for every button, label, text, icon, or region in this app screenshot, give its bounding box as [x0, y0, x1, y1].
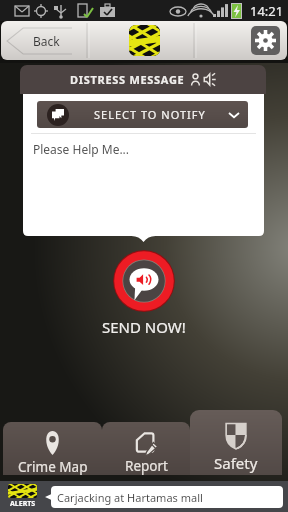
button[interactable]: ALERTS [0, 484, 45, 509]
staticText: Back [33, 33, 60, 49]
button[interactable]: Report [102, 422, 190, 475]
staticText: DISTRESS MESSAGE [70, 72, 185, 87]
staticText: Report [125, 457, 168, 475]
button[interactable]: Back [6, 27, 72, 55]
staticText: SEND NOW! [102, 317, 186, 337]
staticText: 14:21 [250, 2, 284, 20]
button[interactable]: Crime Map [3, 422, 102, 475]
button[interactable]: Crime Check [129, 25, 160, 56]
staticText: Crime Map [18, 458, 88, 475]
button[interactable]: Settings [251, 26, 280, 55]
staticText: SELECT TO NOTIFY [94, 107, 206, 122]
button[interactable]: SELECT TO NOTIFY [37, 101, 248, 128]
staticText: Please Help Me... [33, 141, 130, 157]
button[interactable]: Send Now [113, 250, 175, 312]
staticText: Safety [214, 453, 258, 473]
staticText: Carjacking at Hartamas mall [57, 490, 203, 505]
staticText: ALERTS [10, 499, 36, 509]
button[interactable]: Safety [190, 410, 282, 475]
